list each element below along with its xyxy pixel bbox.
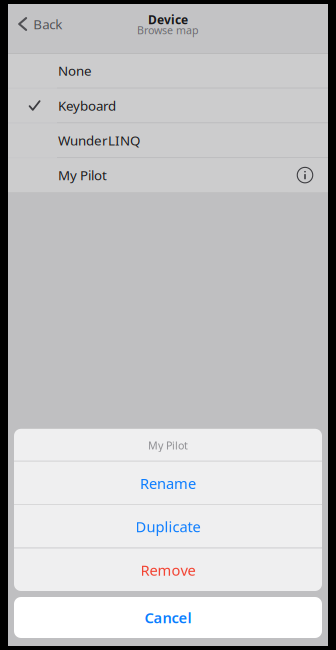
staticText: Back [33, 15, 62, 33]
staticText: Rename [140, 473, 196, 493]
staticText: None [58, 62, 92, 79]
button[interactable]: Keyboard [8, 88, 328, 122]
staticText: Keyboard [58, 97, 116, 114]
button[interactable]: More Info [288, 158, 328, 192]
staticText: Remove [140, 560, 195, 580]
staticText: Device [148, 11, 188, 27]
staticText: WunderLINQ [58, 131, 140, 149]
staticText: My Pilot [148, 438, 188, 452]
button[interactable]: WunderLINQ [8, 123, 328, 157]
button[interactable]: My Pilot [8, 158, 328, 192]
button[interactable]: None [8, 54, 328, 88]
button[interactable]: Remove [14, 548, 322, 591]
staticText: Duplicate [135, 517, 200, 536]
staticText: My Pilot [58, 166, 107, 184]
staticText: Browse map [137, 23, 199, 37]
button[interactable]: Duplicate [14, 505, 322, 548]
button[interactable]: Back [8, 4, 72, 44]
button[interactable]: Rename [14, 462, 322, 504]
button[interactable]: Cancel [8, 597, 328, 638]
staticText: Cancel [144, 608, 191, 627]
